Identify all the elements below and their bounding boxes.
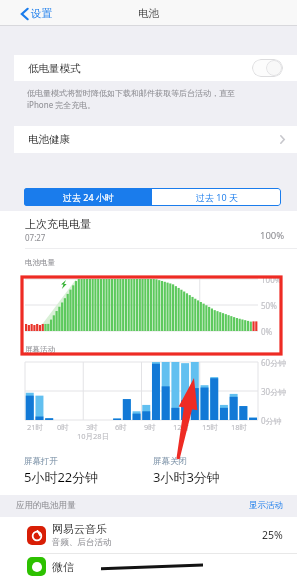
button[interactable]: 过去 24 小时 <box>24 188 152 206</box>
button[interactable]: 过去 10 天 <box>152 188 281 206</box>
staticText: 25% <box>262 528 283 542</box>
staticText: 低电量模式 <box>28 62 81 75</box>
staticText: 电池 <box>138 7 159 20</box>
staticText: 0时 <box>57 422 69 432</box>
button[interactable]: 低电量模式 <box>14 55 297 81</box>
staticText: 21时 <box>27 422 44 432</box>
staticText: 过去 10 天 <box>196 191 238 203</box>
staticText: 15时 <box>202 422 219 432</box>
staticText: 3时 <box>86 422 98 432</box>
staticText: 100% <box>260 229 285 242</box>
staticText: 网易云音乐 <box>52 522 107 536</box>
staticText: 50% <box>261 300 277 311</box>
button[interactable]: Low Power Mode toggle <box>252 59 283 77</box>
staticText: 应用的电池用量 <box>16 500 76 511</box>
staticText: 12时 <box>173 422 190 432</box>
staticText: 18时 <box>231 422 248 432</box>
staticText: 电池电量 <box>25 258 55 267</box>
staticText: 音频、后台活动 <box>52 537 112 548</box>
button[interactable]: 微信 <box>0 554 297 579</box>
staticText: 30分钟 <box>261 386 287 397</box>
staticText: 10月28日 <box>77 431 110 441</box>
staticText: 低电量模式将暂时降低如下载和邮件获取等后台活动，直至 iPhone 完全充电。 <box>27 88 235 110</box>
staticText: 微信 <box>52 560 74 574</box>
staticText: 屏幕关闭 <box>153 456 187 467</box>
staticText: 电池健康 <box>28 133 70 146</box>
staticText: 9时 <box>144 422 156 432</box>
button[interactable]: 电池健康 <box>14 126 297 153</box>
staticText: 屏幕活动 <box>25 345 55 354</box>
staticText: 100% <box>261 274 282 285</box>
staticText: 5小时22分钟 <box>24 468 99 486</box>
staticText: 过去 24 小时 <box>63 191 114 203</box>
staticText: 屏幕打开 <box>24 456 58 467</box>
button[interactable]: Back to Settings <box>0 7 58 20</box>
staticText: 6时 <box>115 422 127 432</box>
staticText: 0% <box>261 326 273 337</box>
staticText: 3小时3分钟 <box>153 468 220 486</box>
staticText: 上次充电电量 <box>25 217 91 231</box>
button[interactable]: 网易云音乐 <box>0 517 297 553</box>
button[interactable]: 显示活动 <box>249 500 283 511</box>
staticText: 60分钟 <box>261 357 287 368</box>
staticText: 0分钟 <box>261 415 282 426</box>
staticText: 设置 <box>31 7 52 20</box>
staticText: 07:27 <box>25 232 46 243</box>
